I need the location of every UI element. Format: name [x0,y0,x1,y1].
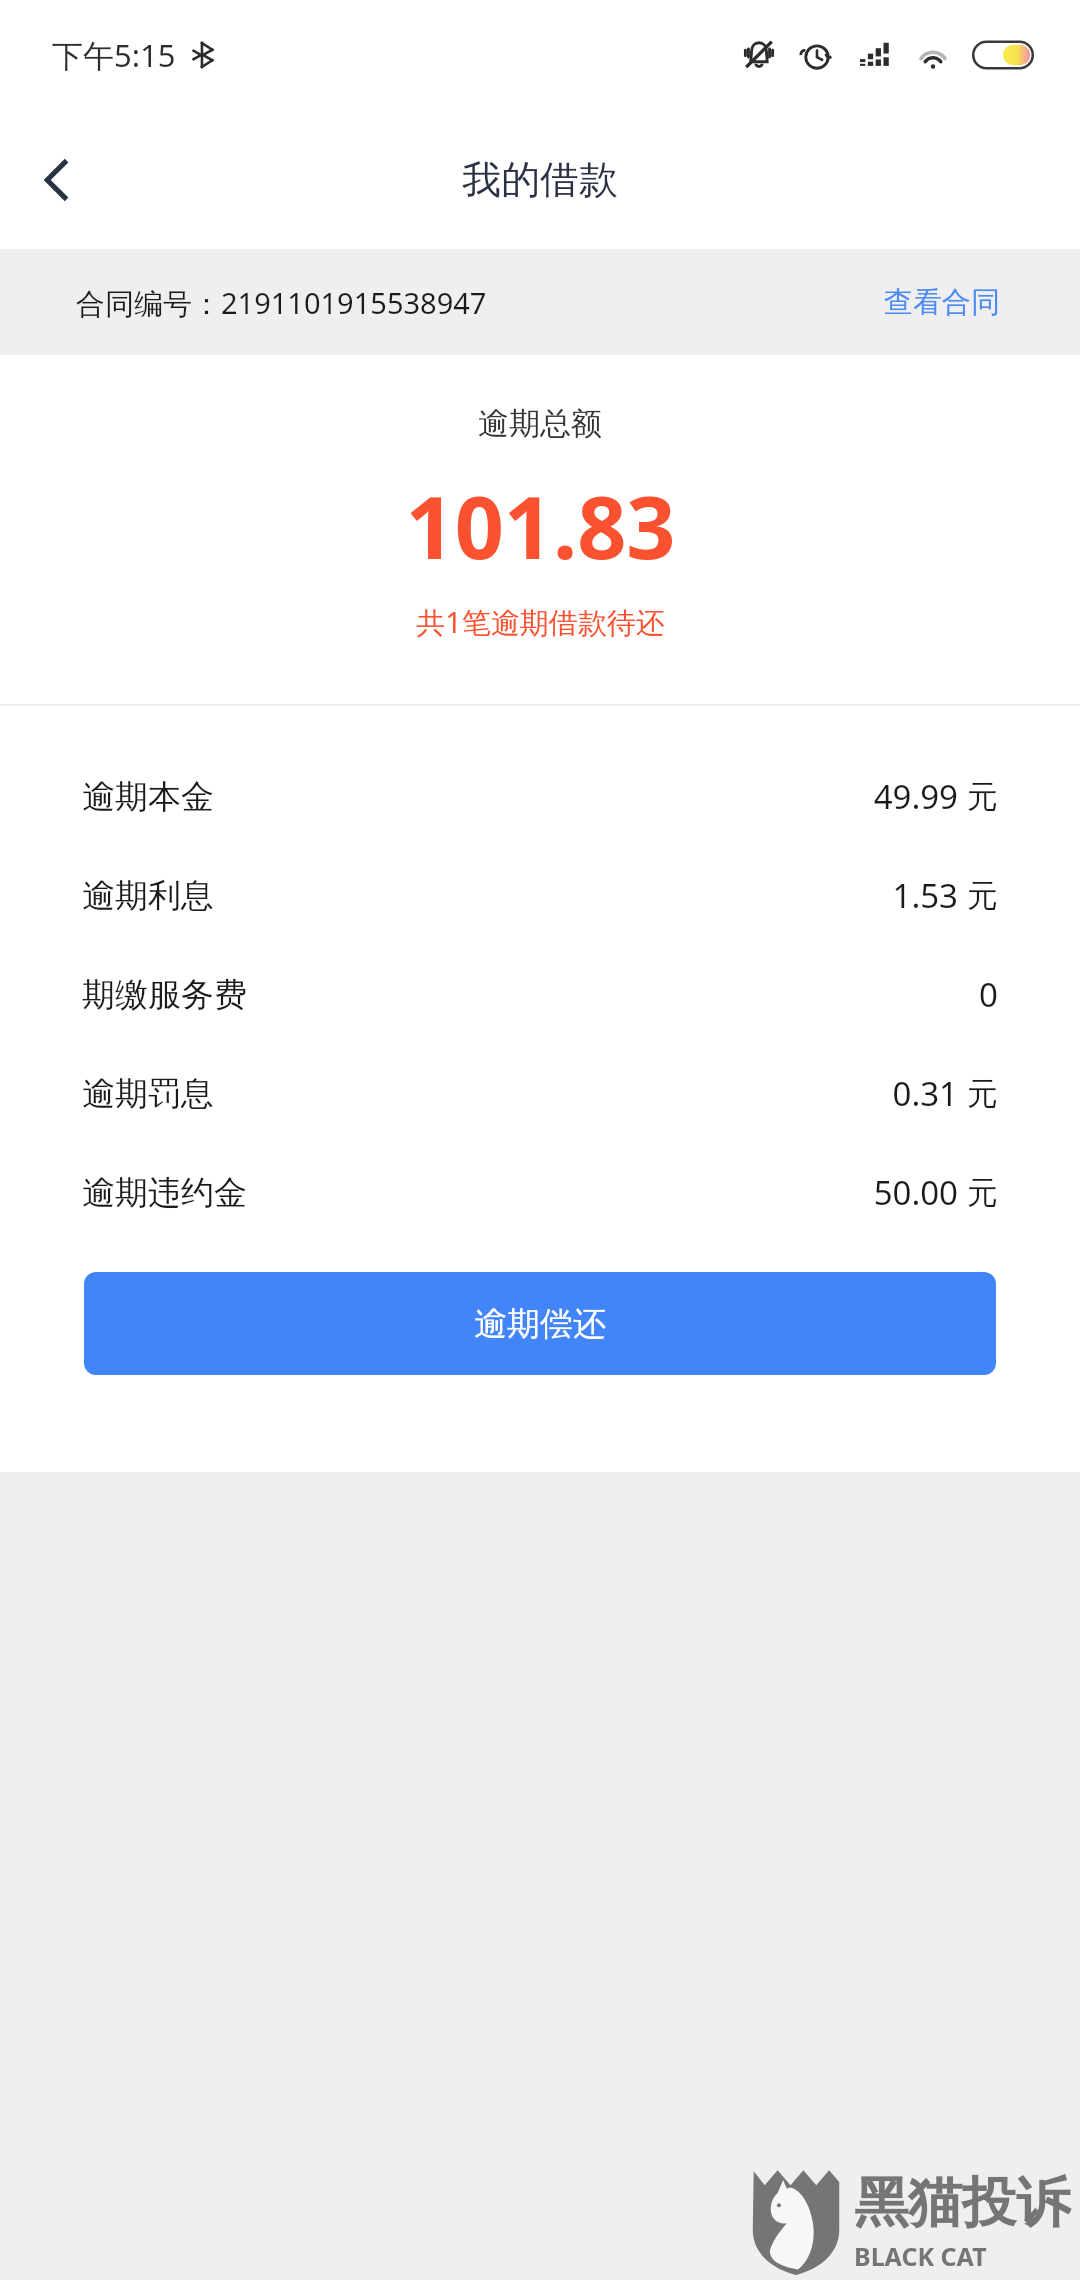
button[interactable]: 逾期本金 [0,747,1080,846]
staticText: 期缴服务费 [82,974,247,1016]
button[interactable]: 查看合同 [880,274,1004,331]
staticText: 黑猫投诉 [854,2169,1070,2237]
staticText: BLACK CAT [854,2239,987,2273]
staticText: 下午5:15 [52,34,176,76]
staticText: 元 [967,777,998,816]
button[interactable]: 逾期罚息 [0,1044,1080,1143]
staticText: 逾期罚息 [82,1073,214,1115]
button[interactable]: 返回 [0,124,112,236]
staticText: 0 [979,972,998,1017]
staticText: 50.00 [873,1170,958,1215]
staticText: 元 [967,1173,998,1212]
staticText: 逾期总额 [478,404,602,443]
staticText: 101.83 [405,467,676,584]
staticText: 共1笔逾期借款待还 [416,602,665,642]
button[interactable]: 期缴服务费 [0,945,1080,1044]
staticText: 我的借款 [462,155,618,204]
staticText: 49.99 [873,774,958,819]
staticText: 逾期本金 [82,776,214,818]
button[interactable]: 逾期违约金 [0,1143,1080,1242]
staticText: 逾期利息 [82,875,214,917]
staticText: 查看合同 [884,284,1000,321]
staticText: 0.31 [892,1071,958,1116]
staticText: 逾期偿还 [474,1303,606,1345]
staticText: 元 [967,876,998,915]
staticText: 1.53 [892,873,958,918]
staticText: 逾期违约金 [82,1172,247,1214]
staticText: 元 [967,1074,998,1113]
button[interactable]: 逾期利息 [0,846,1080,945]
staticText: 合同编号：2191101915538947 [76,283,487,323]
button[interactable]: 逾期偿还 [84,1272,996,1375]
